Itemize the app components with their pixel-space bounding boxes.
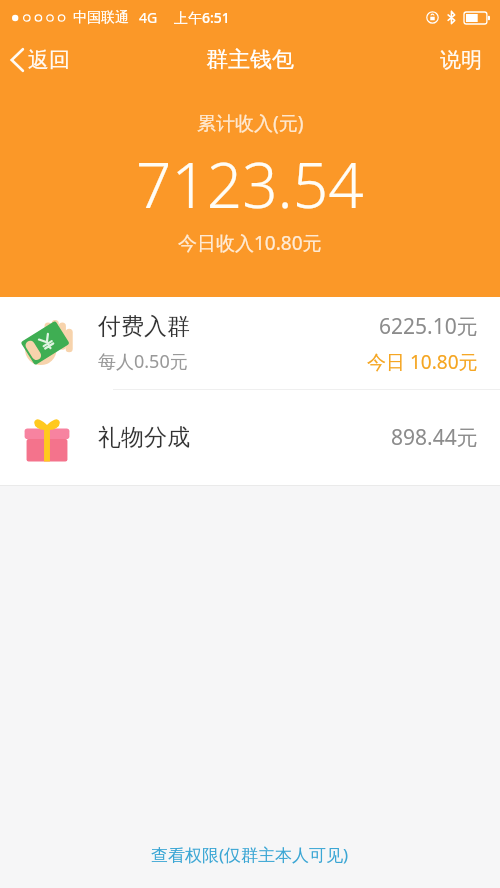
staticText: 898.44元	[391, 423, 478, 452]
staticText: 6225.10元	[379, 312, 478, 341]
button[interactable]: 返回	[0, 34, 82, 86]
button[interactable]: 付费入群	[0, 297, 500, 389]
staticText: 群主钱包	[206, 46, 294, 74]
staticText: 中国联通	[73, 9, 129, 27]
other: 礼物分成	[19, 410, 75, 466]
staticText: 返回	[28, 47, 70, 73]
staticText: 今日 10.80元	[367, 349, 478, 375]
staticText: 付费入群	[98, 312, 190, 341]
button[interactable]: 礼物分成	[0, 390, 500, 485]
staticText: 礼物分成	[98, 423, 190, 452]
staticText: 累计收入(元)	[197, 110, 304, 136]
button[interactable]: 说明	[426, 34, 500, 86]
button[interactable]: 查看权限(仅群主本人可见)	[139, 839, 361, 870]
staticText: 今日收入10.80元	[178, 230, 322, 256]
other: 付费入群	[16, 312, 78, 374]
staticText: 上午6:51	[174, 8, 230, 27]
staticText: 4G	[139, 8, 158, 27]
staticText: 每人0.50元	[98, 349, 188, 374]
staticText: 7123.54	[136, 142, 364, 226]
